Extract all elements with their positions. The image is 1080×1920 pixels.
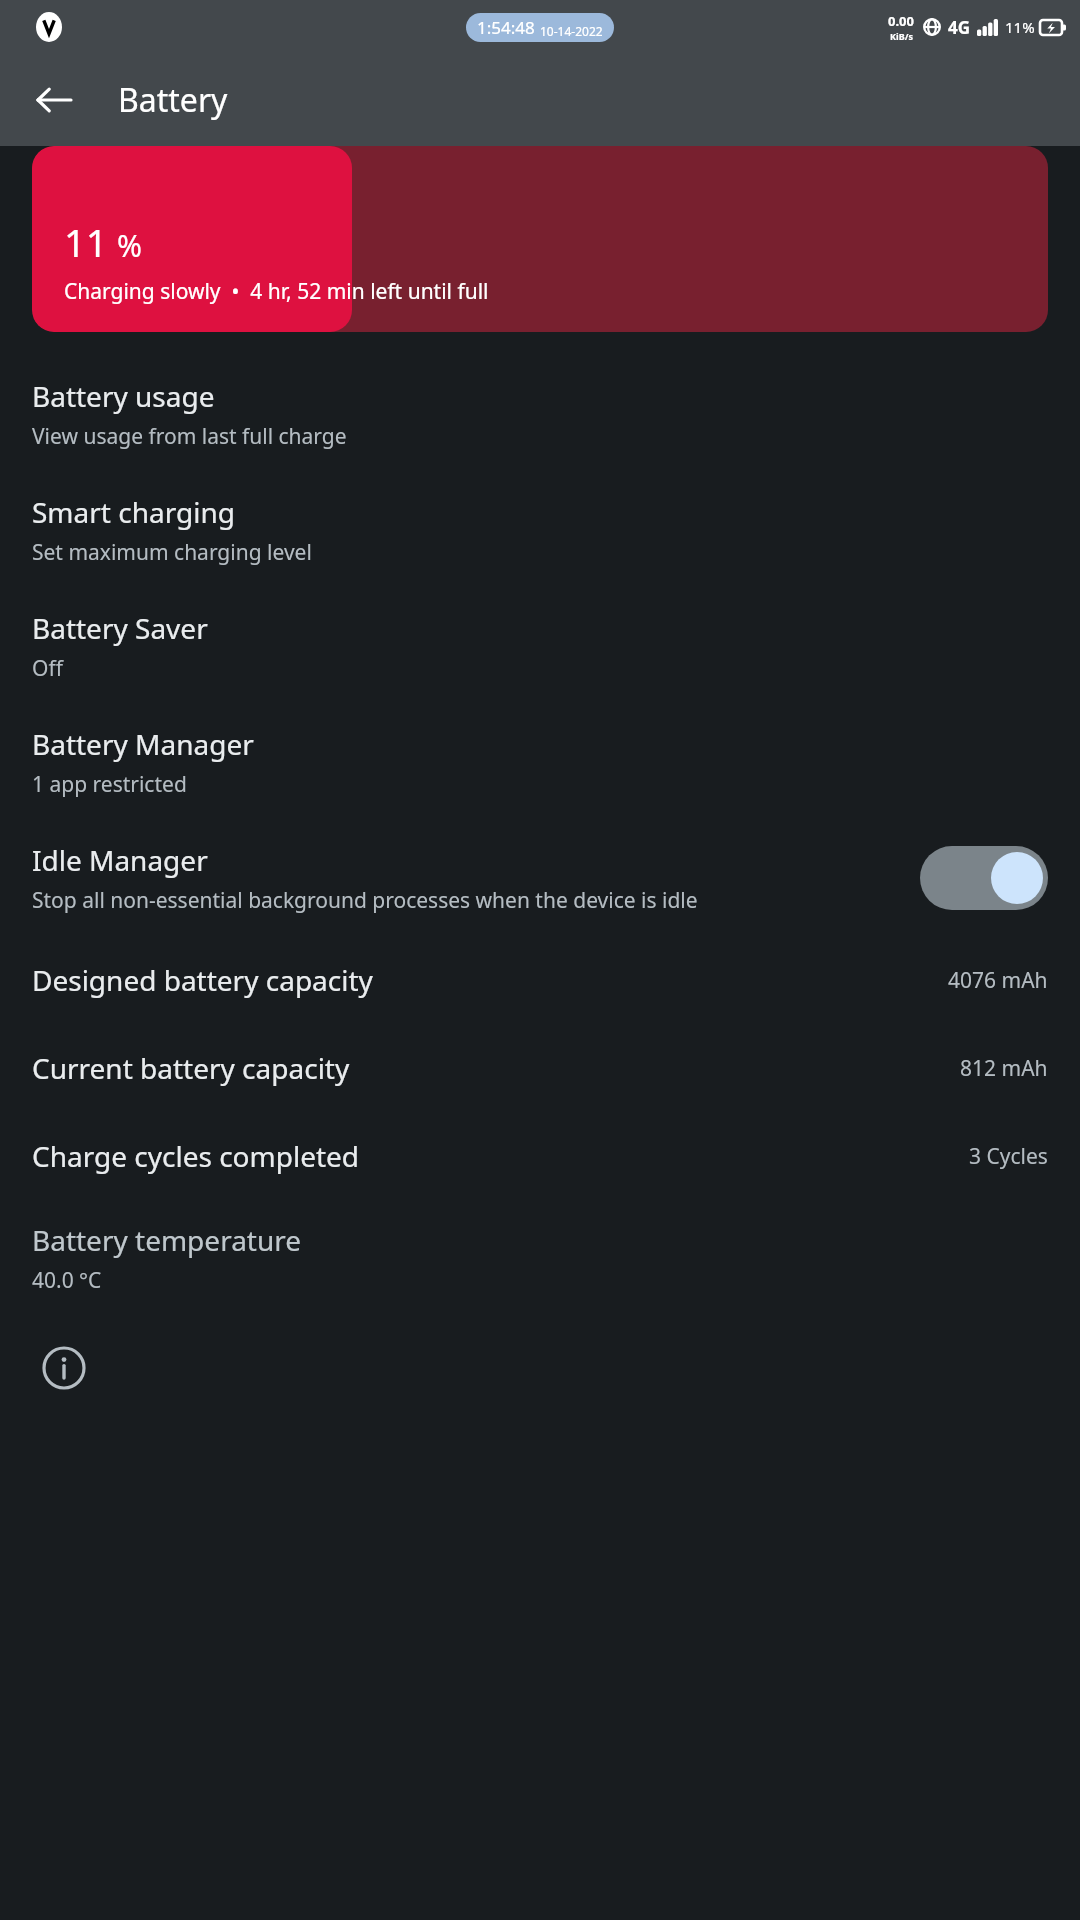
- staticText: Designed battery capacity: [32, 961, 948, 999]
- button[interactable]: Idle Manager toggle: [920, 846, 1048, 910]
- button[interactable]: Charge cycles completed: [0, 1112, 1080, 1200]
- button[interactable]: Battery temperature: [0, 1200, 1080, 1316]
- staticText: 4076 mAh: [948, 966, 1048, 995]
- button[interactable]: Back: [22, 68, 86, 132]
- staticText: 10-14-2022: [540, 23, 603, 39]
- staticText: Smart charging: [32, 493, 235, 531]
- button[interactable]: Smart charging: [0, 472, 1080, 588]
- staticText: Battery: [118, 78, 228, 122]
- button[interactable]: Battery Saver: [0, 588, 1080, 704]
- staticText: Battery temperature: [32, 1221, 302, 1259]
- staticText: Idle Manager: [32, 841, 208, 879]
- staticText: Stop all non-essential background proces…: [32, 886, 698, 915]
- button[interactable]: Current battery capacity: [0, 1024, 1080, 1112]
- staticText: 40.0 °C: [32, 1266, 102, 1295]
- staticText: %: [117, 225, 142, 266]
- button[interactable]: Designed battery capacity: [0, 936, 1080, 1024]
- staticText: KiB/s: [890, 30, 913, 42]
- staticText: 11%: [1005, 17, 1035, 37]
- button[interactable]: Battery usage: [0, 356, 1080, 472]
- staticText: Current battery capacity: [32, 1049, 960, 1087]
- staticText: Set maximum charging level: [32, 538, 312, 567]
- button[interactable]: Battery Manager: [0, 704, 1080, 820]
- staticText: 11: [64, 216, 108, 268]
- staticText: 1:54:48: [477, 16, 535, 39]
- staticText: 812 mAh: [960, 1054, 1048, 1083]
- button[interactable]: 11: [32, 146, 1048, 332]
- staticText: Battery Saver: [32, 609, 208, 647]
- staticText: Charge cycles completed: [32, 1137, 969, 1175]
- staticText: 0.00: [888, 12, 914, 30]
- button[interactable]: Idle Manager: [0, 820, 1080, 936]
- button[interactable]: Information: [32, 1336, 96, 1400]
- staticText: 4G: [948, 16, 971, 39]
- staticText: 1 app restricted: [32, 770, 187, 799]
- staticText: Battery usage: [32, 377, 215, 415]
- staticText: Battery Manager: [32, 725, 254, 763]
- staticText: Charging slowly • 4 hr, 52 min left unti…: [64, 277, 489, 306]
- staticText: 3 Cycles: [969, 1142, 1048, 1171]
- staticText: View usage from last full charge: [32, 422, 347, 451]
- staticText: Off: [32, 654, 63, 683]
